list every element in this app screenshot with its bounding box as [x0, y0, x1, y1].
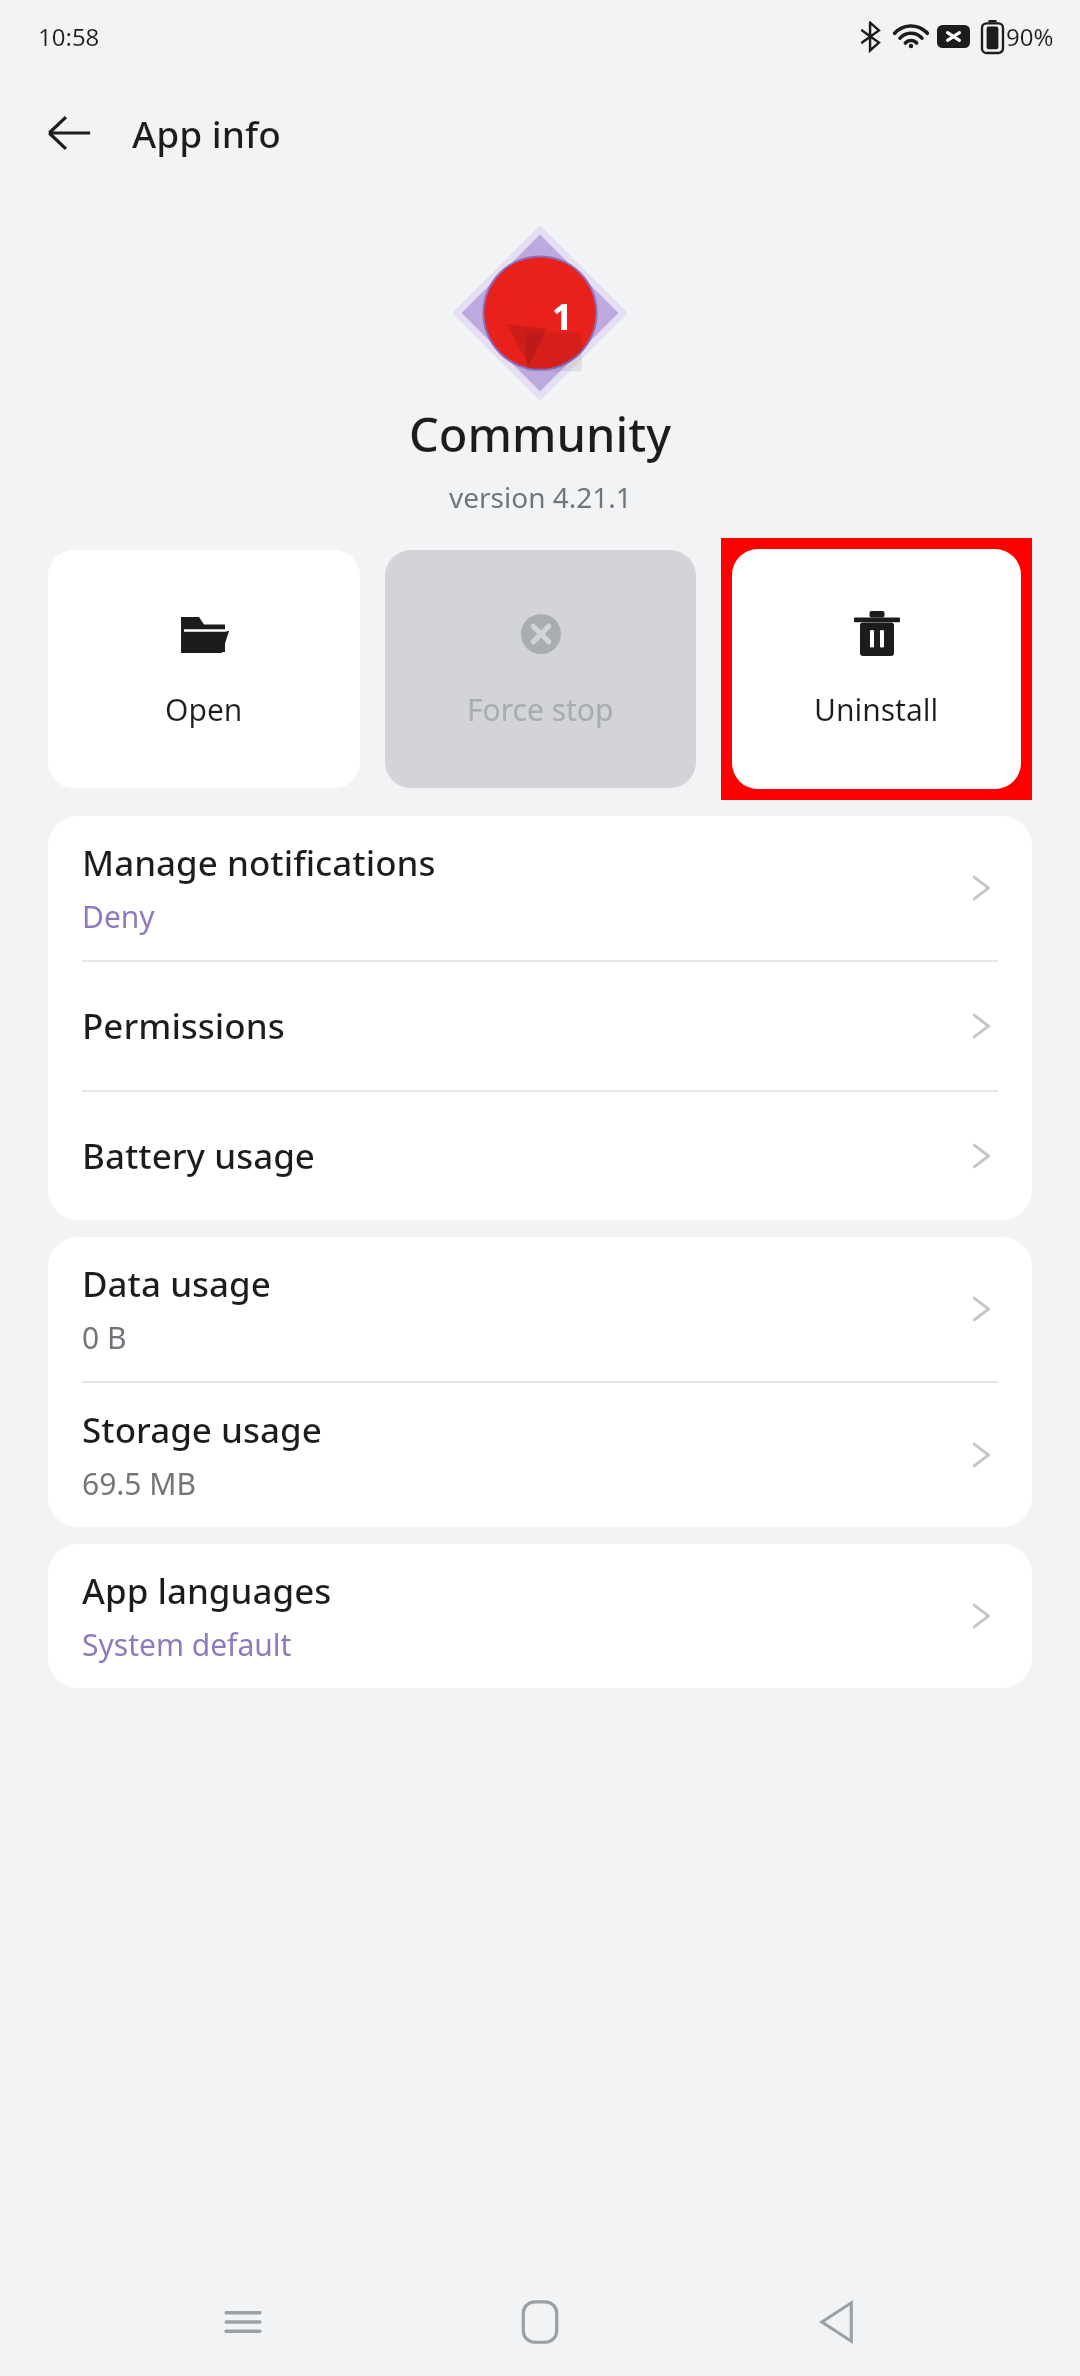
staticText: Deny	[82, 896, 155, 937]
staticText: Open	[165, 689, 243, 730]
button[interactable]: Force stop	[385, 550, 696, 788]
staticText: Force stop	[467, 689, 614, 730]
staticText: App info	[132, 108, 281, 158]
button[interactable]: Manage notifications	[48, 816, 1032, 960]
staticText: 90%	[1006, 20, 1054, 53]
button[interactable]: Home	[486, 2268, 594, 2376]
button[interactable]: Recent apps	[189, 2268, 297, 2376]
button[interactable]: Back	[783, 2268, 891, 2376]
button[interactable]: App languages	[48, 1544, 1032, 1688]
button[interactable]: Back	[36, 100, 102, 166]
button[interactable]: Data usage	[48, 1237, 1032, 1381]
button[interactable]: Battery usage	[48, 1092, 1032, 1220]
staticText: Battery usage	[82, 1132, 315, 1180]
button[interactable]: Uninstall	[732, 549, 1021, 789]
staticText: Manage notifications	[82, 839, 436, 887]
staticText: System default	[82, 1624, 292, 1665]
staticText: Permissions	[82, 1002, 285, 1050]
button[interactable]: Open	[48, 550, 360, 788]
staticText: version 4.21.1	[449, 478, 632, 516]
staticText: 10:58	[38, 20, 100, 53]
staticText: 0 B	[82, 1317, 127, 1358]
staticText: Data usage	[82, 1260, 271, 1308]
staticText: Storage usage	[82, 1406, 322, 1454]
button[interactable]: Storage usage	[48, 1383, 1032, 1527]
staticText: App languages	[82, 1567, 332, 1615]
staticText: Uninstall	[814, 689, 939, 730]
staticText: Community	[409, 402, 672, 466]
button[interactable]: Permissions	[48, 962, 1032, 1090]
staticText: 1	[552, 292, 573, 341]
staticText: 69.5 MB	[82, 1463, 197, 1504]
